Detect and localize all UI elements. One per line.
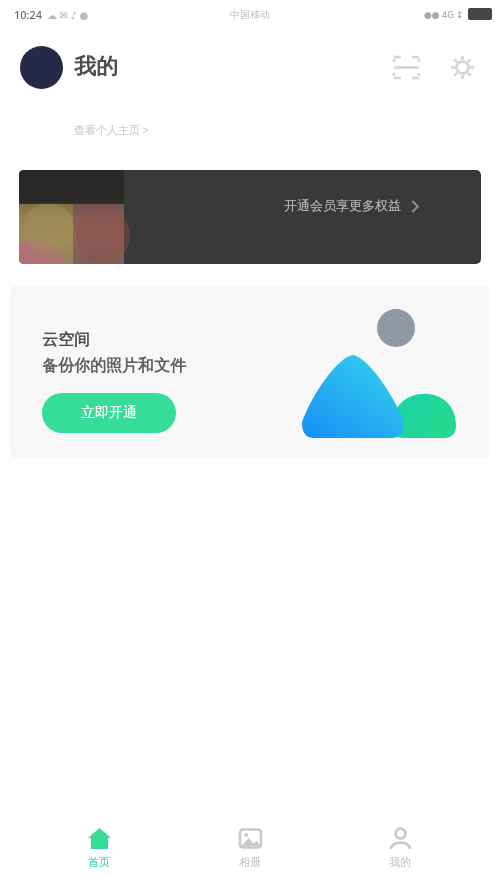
staticText: 查看个人主页 > — [74, 122, 150, 137]
staticText: 中国移动 — [230, 8, 270, 21]
staticText: ●● 4G ↕ — [424, 8, 464, 20]
button[interactable]: 立即开通 — [42, 393, 176, 433]
staticText: 备份你的照片和文件 — [42, 356, 186, 376]
staticText: 相册 — [239, 855, 261, 869]
button[interactable]: 云空间 — [10, 286, 490, 458]
button[interactable]: Settings — [444, 49, 480, 85]
staticText: 云空间 — [42, 330, 90, 350]
staticText: 立即开通 — [81, 404, 137, 422]
staticText: 首页 — [88, 855, 110, 869]
staticText: 我的 — [389, 855, 411, 869]
button[interactable]: Scan QR code — [388, 49, 424, 85]
button[interactable]: 相册 — [200, 826, 300, 869]
button[interactable]: Profile avatar — [20, 46, 63, 89]
staticText: 10:24 — [14, 7, 43, 22]
button[interactable]: 开通会员享更多权益 — [19, 170, 481, 264]
staticText: ☁ ✉ ♪ ● — [47, 8, 89, 22]
staticText: 开通会员享更多权益 — [284, 197, 401, 213]
button[interactable]: 首页 — [49, 826, 149, 869]
button[interactable]: 我的 — [350, 826, 450, 869]
staticText: 我的 — [74, 53, 118, 81]
